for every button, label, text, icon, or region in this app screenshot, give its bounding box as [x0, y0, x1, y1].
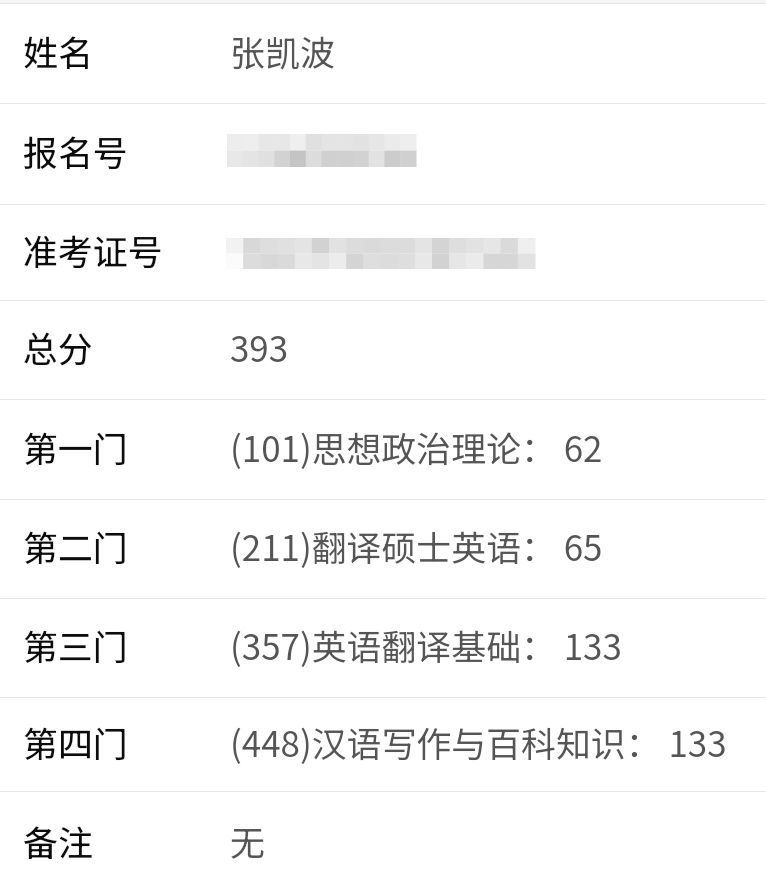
staticText: 准考证号 [23, 225, 163, 276]
button[interactable]: 准考证号 [0, 205, 766, 301]
other: 报名号 (hidden) [227, 134, 416, 167]
button[interactable]: 第四门 [0, 698, 766, 792]
staticText: 报名号 [23, 126, 128, 177]
staticText: (448)汉语写作与百科知识： 133 [230, 717, 727, 768]
staticText: 总分 [23, 322, 93, 373]
staticText: (101)思想政治理论： 62 [230, 422, 603, 473]
staticText: 无 [230, 816, 265, 867]
other: 准考证号 (hidden) [226, 238, 535, 269]
button[interactable]: 第一门 [0, 400, 766, 500]
button[interactable]: 姓名 [0, 4, 766, 104]
staticText: (357)英语翻译基础： 133 [230, 620, 622, 671]
staticText: 张凯波 [230, 26, 335, 77]
button[interactable]: 第三门 [0, 599, 766, 698]
staticText: 备注 [23, 816, 93, 867]
staticText: (211)翻译硕士英语： 65 [230, 521, 603, 572]
staticText: 第一门 [23, 422, 128, 473]
button[interactable]: 第二门 [0, 500, 766, 599]
staticText: 第三门 [23, 620, 128, 671]
button[interactable]: 报名号 [0, 104, 766, 205]
button[interactable]: 备注 [0, 792, 766, 896]
staticText: 姓名 [23, 26, 93, 77]
staticText: 第二门 [23, 521, 128, 572]
staticText: 393 [230, 322, 289, 373]
staticText: 第四门 [23, 717, 128, 768]
button[interactable]: 总分 [0, 301, 766, 400]
